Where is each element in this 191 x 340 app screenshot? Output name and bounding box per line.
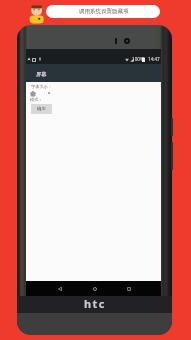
staticText: 模式： bbox=[30, 97, 43, 102]
staticText: htc bbox=[84, 296, 106, 311]
button[interactable]: Recents bbox=[121, 281, 136, 296]
staticText: 14:47 bbox=[148, 56, 160, 62]
staticText: 调用系统设置隐藏项 bbox=[79, 8, 129, 15]
staticText: 字体大小： bbox=[31, 84, 52, 89]
staticText: 100% bbox=[132, 56, 144, 62]
staticText: 屏幕 bbox=[36, 71, 47, 78]
button[interactable]: Home bbox=[87, 281, 102, 296]
button[interactable]: Back bbox=[52, 281, 67, 296]
button[interactable]: 调用系统设置隐藏项 bbox=[46, 5, 160, 18]
button[interactable]: 确定 bbox=[31, 104, 52, 114]
staticText: 确定 bbox=[37, 106, 46, 112]
